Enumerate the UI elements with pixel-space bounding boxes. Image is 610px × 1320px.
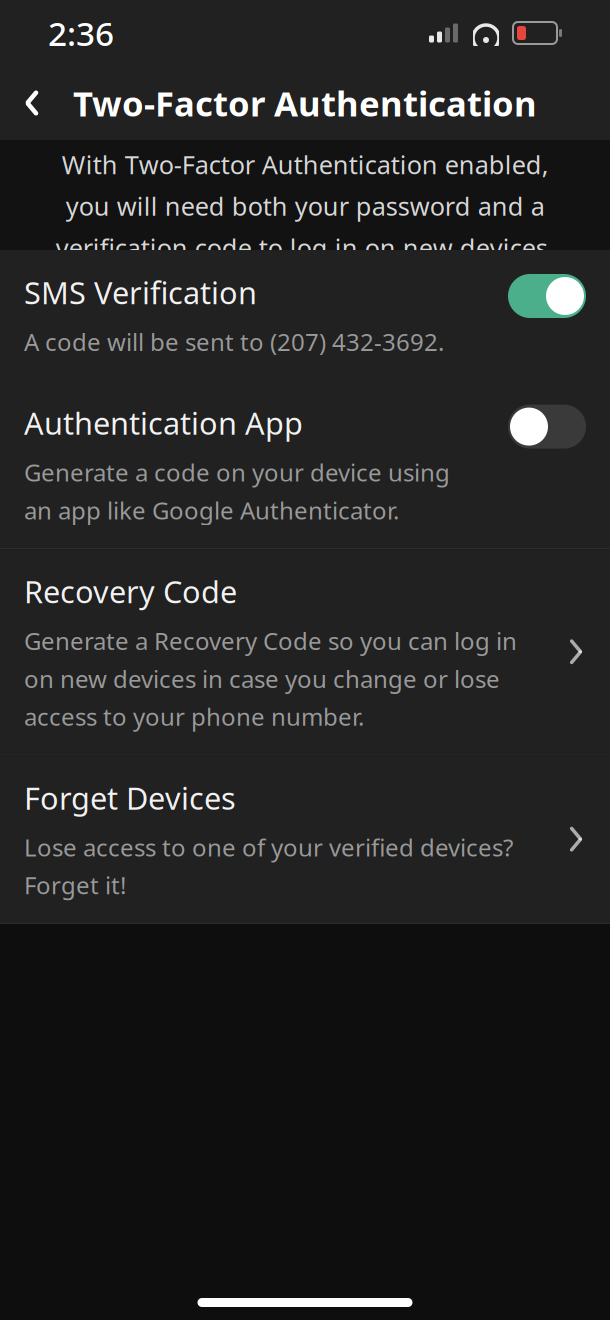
staticText: Generate a Recovery Code so you can log …	[24, 625, 517, 732]
staticText: Generate a code on your device using an …	[24, 456, 450, 526]
button[interactable]: Forget Devices	[0, 755, 610, 923]
staticText: 2:36	[48, 11, 114, 55]
button[interactable]: Recovery Code	[0, 549, 610, 754]
staticText: Forget Devices	[24, 777, 236, 818]
staticText: Two-Factor Authentication	[73, 80, 537, 126]
staticText: Lose access to one of your verified devi…	[24, 831, 513, 901]
staticText: A code will be sent to (207) 432-3692.	[24, 326, 444, 358]
staticText: SMS Verification	[24, 272, 257, 313]
staticText: Authentication App	[24, 403, 303, 443]
button[interactable]: Authentication App	[0, 381, 610, 548]
button[interactable]: SMS Verification	[0, 250, 610, 380]
staticText: With Two-Factor Authentication enabled, …	[55, 147, 554, 264]
staticText: Recovery Code	[24, 571, 237, 612]
button[interactable]: Back	[0, 66, 64, 140]
